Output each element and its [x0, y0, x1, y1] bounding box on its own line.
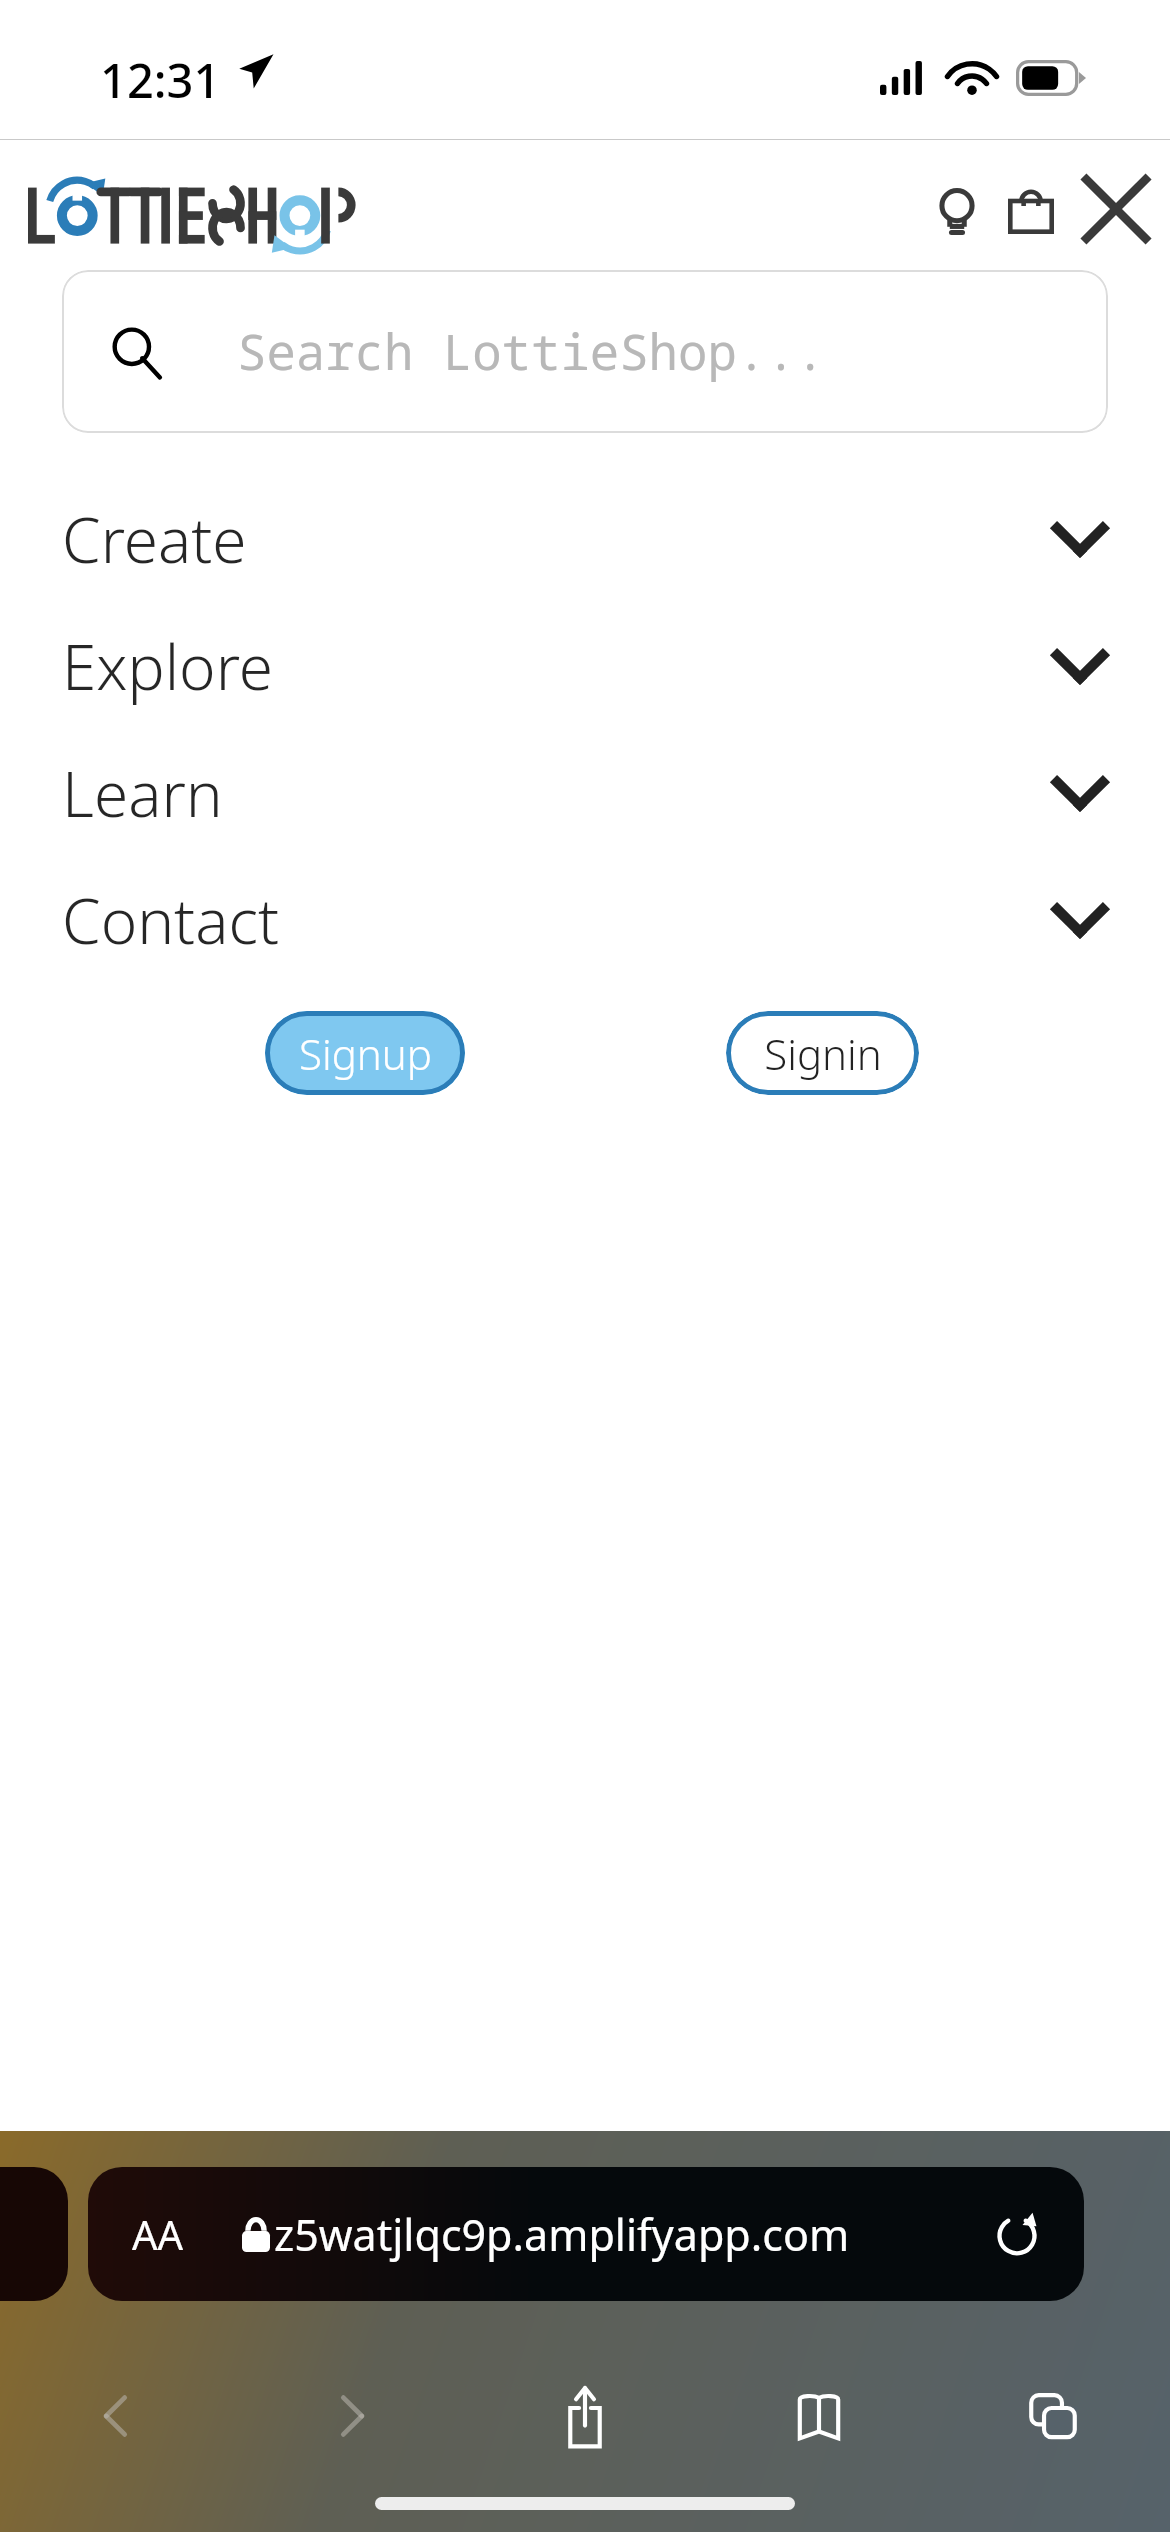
button[interactable]: Create [0, 475, 1170, 602]
button[interactable]: Learn [0, 729, 1170, 856]
button[interactable]: Signin [726, 1011, 919, 1095]
button[interactable]: Close menu [1068, 161, 1164, 257]
staticText: Signup [299, 1025, 432, 1082]
button[interactable]: Contact [0, 856, 1170, 983]
staticText: Learn [62, 751, 223, 835]
button[interactable]: LottieShop home [28, 170, 473, 250]
button[interactable]: Explore [0, 602, 1170, 729]
button[interactable]: Ideas [920, 172, 994, 246]
button[interactable]: Shopping bag [994, 172, 1068, 246]
other: Reload [994, 2211, 1040, 2257]
staticText: Explore [62, 624, 274, 708]
button[interactable]: Forward [234, 2356, 468, 2476]
button[interactable]: AA [88, 2167, 1084, 2301]
button[interactable]: Share [468, 2356, 702, 2476]
button[interactable]: Tabs [936, 2356, 1170, 2476]
staticText: Contact [62, 878, 280, 962]
staticText: 12:31 [100, 48, 221, 112]
staticText: Search LottieShop... [237, 318, 826, 385]
staticText: z5watjlqc9p.amplifyapp.com [274, 2205, 850, 2264]
button[interactable]: Back [0, 2356, 234, 2476]
staticText: AA [132, 2207, 184, 2261]
staticText: Signin [764, 1025, 882, 1082]
button[interactable]: Search LottieShop... [62, 270, 1108, 433]
button[interactable]: Signup [265, 1011, 465, 1095]
button[interactable]: Bookmarks [702, 2356, 936, 2476]
staticText: Create [62, 497, 247, 581]
